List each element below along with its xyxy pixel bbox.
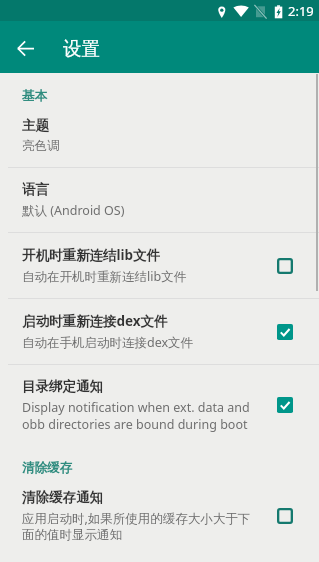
button[interactable]: Toggle: [277, 397, 293, 413]
button[interactable]: 目录绑定通知: [0, 365, 319, 445]
staticText: 主题: [22, 117, 49, 134]
staticText: 应用启动时,如果所使用的缓存大小大于下 面的值时显示通知: [22, 510, 251, 543]
staticText: 清除缓存: [22, 460, 72, 476]
button[interactable]: 启动时重新连接dex文件: [0, 299, 319, 364]
button[interactable]: Back: [7, 30, 44, 67]
staticText: 自动在开机时重新连结lib文件: [22, 268, 187, 285]
staticText: Display notification when ext. data and …: [22, 399, 250, 432]
button[interactable]: 主题: [0, 104, 319, 167]
button[interactable]: Toggle: [277, 324, 293, 340]
staticText: 基本: [22, 88, 47, 104]
button[interactable]: Toggle: [277, 258, 293, 274]
button[interactable]: 语言: [0, 168, 319, 232]
staticText: 语言: [22, 181, 49, 198]
staticText: 开机时重新连结lib文件: [22, 246, 161, 264]
staticText: 目录绑定通知: [22, 378, 103, 395]
staticText: 自动在手机启动时连接dex文件: [22, 334, 194, 351]
button[interactable]: 开机时重新连结lib文件: [0, 233, 319, 298]
staticText: 2:19: [288, 2, 314, 20]
staticText: 清除缓存通知: [22, 489, 103, 506]
button[interactable]: 清除缓存通知: [0, 476, 319, 556]
staticText: 设置: [63, 37, 100, 60]
staticText: 启动时重新连接dex文件: [22, 312, 168, 330]
staticText: 亮色调: [22, 138, 60, 154]
staticText: 默认 (Android OS): [22, 202, 125, 219]
button[interactable]: Toggle: [277, 508, 293, 524]
